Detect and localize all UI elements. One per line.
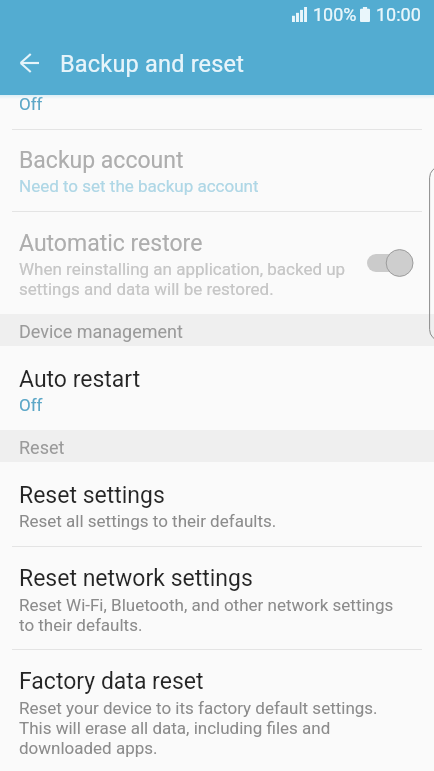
- staticText: 10:00: [376, 4, 421, 25]
- staticText: Reset Wi-Fi, Bluetooth, and other networ…: [19, 595, 394, 635]
- button[interactable]: Automatic restore: [0, 212, 434, 314]
- staticText: When reinstalling an application, backed…: [19, 259, 346, 299]
- staticText: Reset settings: [19, 482, 165, 509]
- staticText: Reset your device to its factory default…: [19, 698, 378, 758]
- staticText: Backup and reset: [60, 50, 245, 78]
- staticText: Reset all settings to their defaults.: [19, 511, 277, 531]
- button[interactable]: Back: [4, 41, 54, 85]
- staticText: Auto restart: [19, 366, 141, 393]
- staticText: Off: [19, 94, 43, 114]
- staticText: Device management: [19, 321, 183, 342]
- staticText: Reset network settings: [19, 565, 253, 592]
- staticText: Factory data reset: [19, 668, 204, 695]
- button[interactable]: Backup account: [0, 130, 434, 212]
- staticText: 100%: [313, 4, 357, 25]
- button[interactable]: Reset network settings: [0, 548, 434, 649]
- button[interactable]: Reset settings: [0, 462, 434, 547]
- staticText: Backup account: [19, 147, 184, 174]
- staticText: Reset: [19, 437, 65, 458]
- staticText: Automatic restore: [19, 230, 203, 257]
- button[interactable]: Auto restart: [0, 346, 434, 430]
- staticText: Off: [19, 395, 43, 415]
- button[interactable]: Factory data reset: [0, 650, 434, 771]
- staticText: Need to set the backup account: [19, 176, 259, 196]
